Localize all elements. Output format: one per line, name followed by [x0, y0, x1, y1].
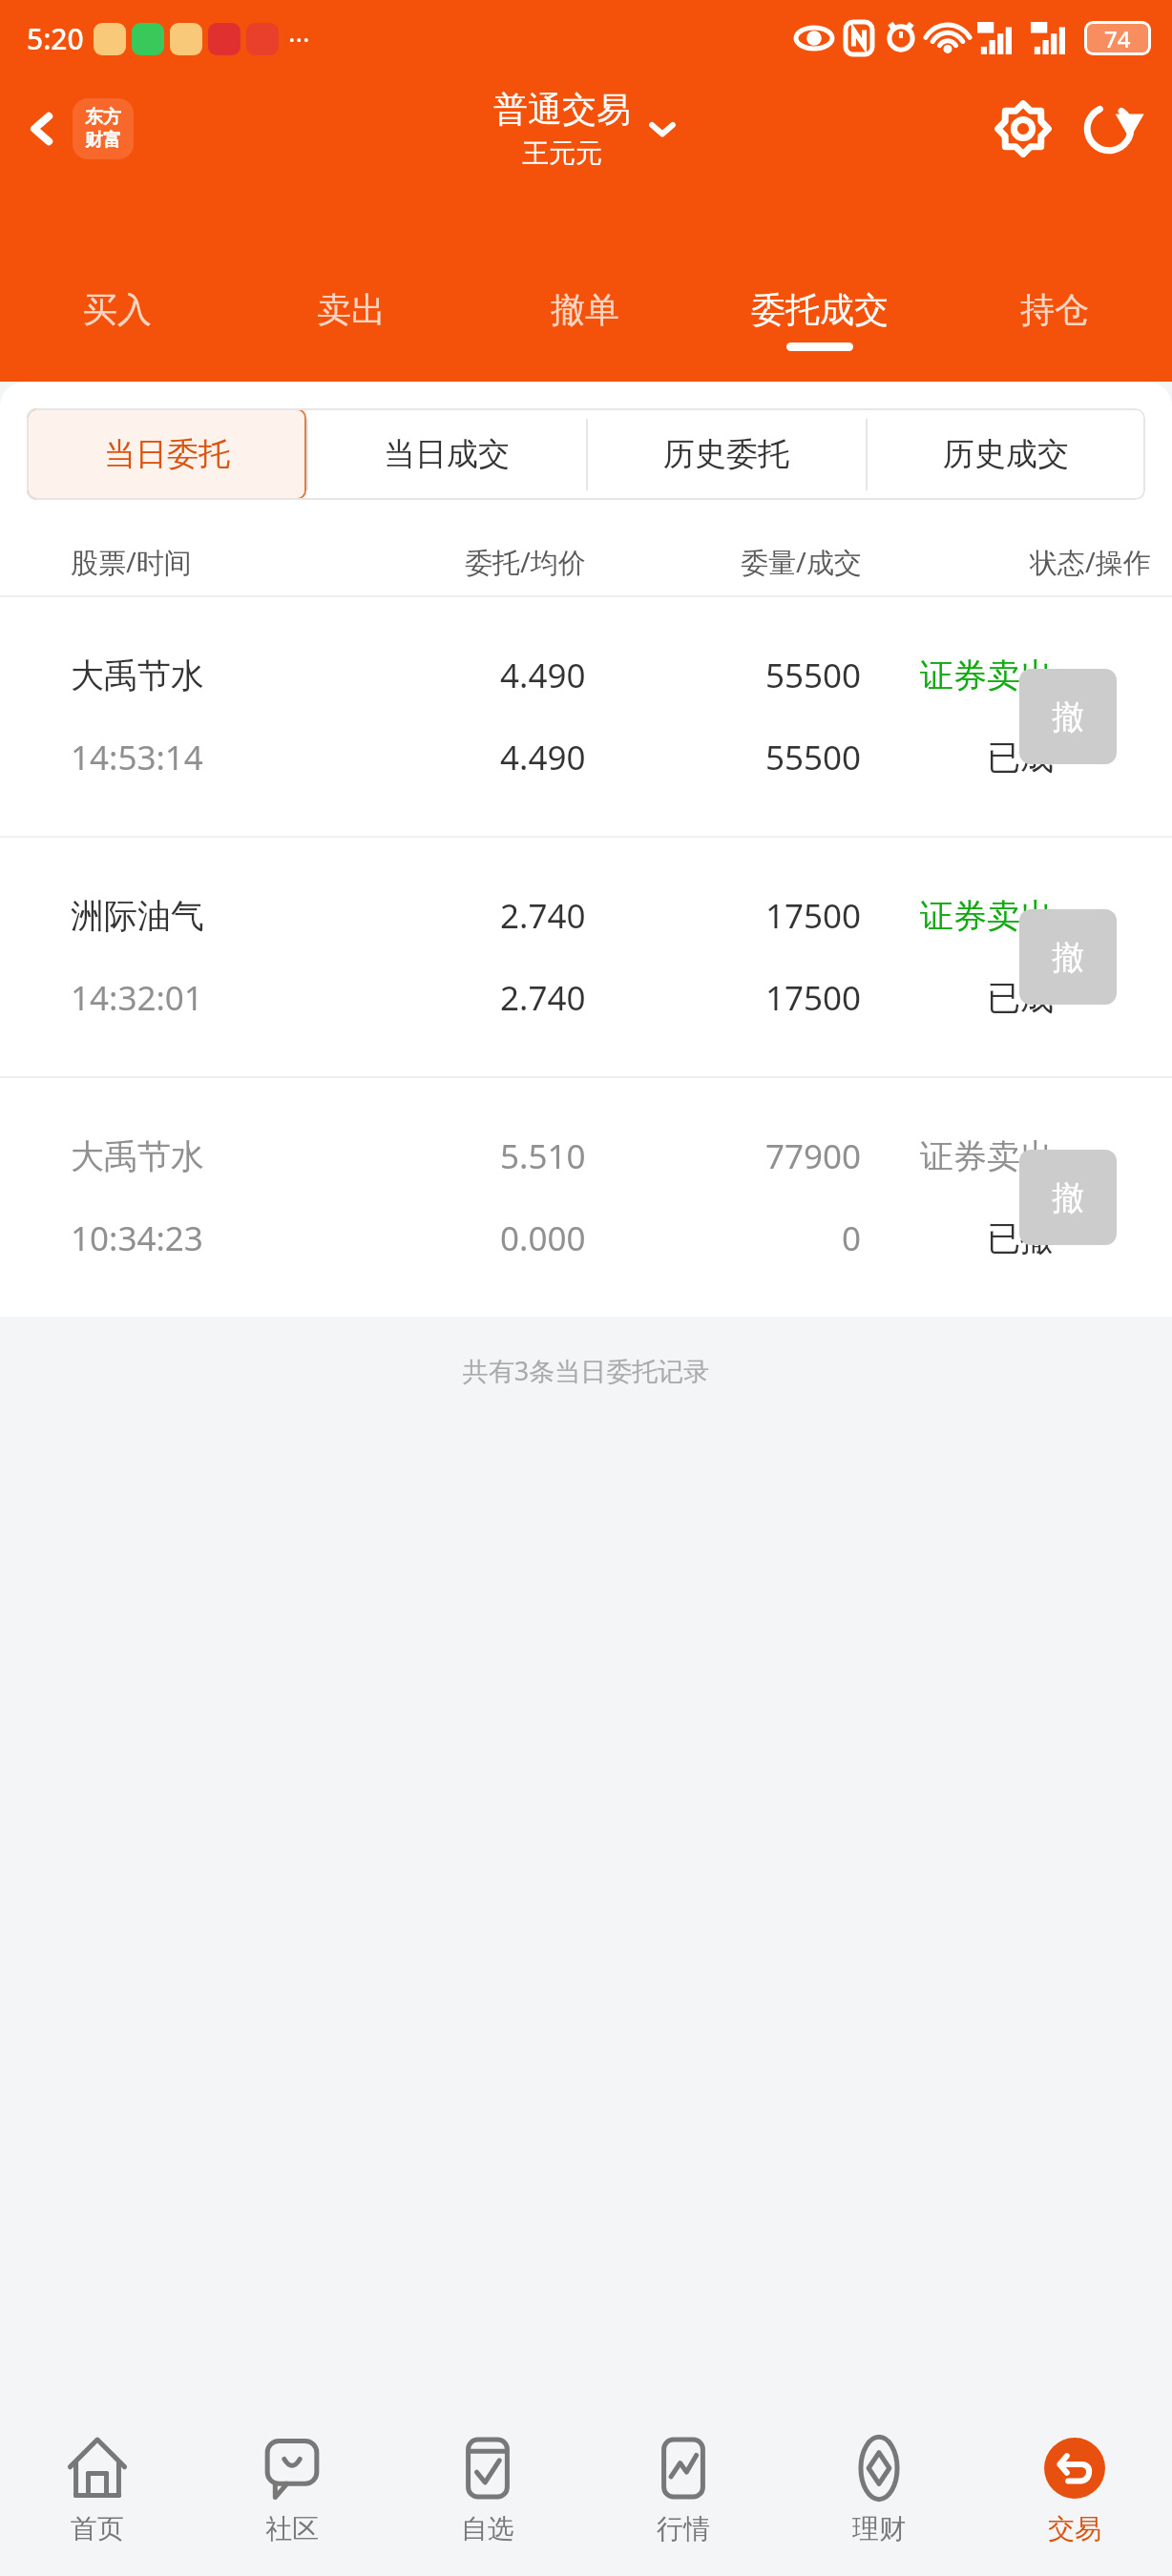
staticText: 首页 [71, 2512, 124, 2545]
staticText: 大禹节水 [71, 654, 204, 696]
staticText: 0.000 [500, 1215, 586, 1261]
button[interactable]: 撤单 [468, 277, 702, 382]
staticText: 交易 [1048, 2512, 1101, 2545]
staticText: 撤 [1052, 696, 1084, 737]
staticText: 77900 [765, 1133, 862, 1179]
staticText: 历史委托 [663, 434, 789, 474]
staticText: 74 [1104, 23, 1131, 54]
staticText: 卖出 [317, 288, 386, 331]
button[interactable]: 当日成交 [306, 408, 586, 500]
staticText: 2.740 [500, 975, 586, 1021]
button[interactable]: 撤 [1019, 909, 1117, 1005]
button[interactable]: 首页 [0, 2404, 195, 2576]
staticText: 历史成交 [943, 434, 1069, 474]
button[interactable]: 历史成交 [866, 408, 1145, 500]
staticText: 已撤 [987, 1217, 1054, 1259]
staticText: 10:34:23 [71, 1215, 203, 1261]
staticText: 14:53:14 [71, 735, 203, 780]
button[interactable]: 当日委托 [27, 408, 306, 500]
staticText: 当日成交 [384, 434, 510, 474]
staticText: 社区 [265, 2512, 319, 2545]
staticText: 撤单 [551, 288, 619, 331]
staticText: 5.510 [500, 1133, 586, 1179]
button[interactable]: 返回 [17, 93, 139, 165]
staticText: ··· [288, 21, 310, 57]
staticText: 委量/成交 [741, 543, 862, 581]
staticText: 买入 [83, 288, 152, 331]
button[interactable]: 委托成交 [702, 277, 937, 382]
button[interactable]: 撤 [1019, 669, 1117, 764]
button[interactable]: 行情 [585, 2404, 781, 2576]
staticText: 撤 [1052, 1177, 1084, 1218]
staticText: 东方 [85, 106, 121, 129]
staticText: 委托/均价 [465, 543, 586, 581]
staticText: 共有3条当日委托记录 [0, 1353, 1172, 1388]
staticText: 状态/操作 [1030, 543, 1151, 581]
button[interactable]: 持仓 [937, 277, 1172, 382]
staticText: 撤 [1052, 937, 1084, 978]
button[interactable]: 历史委托 [586, 408, 866, 500]
staticText: 普通交易 [493, 88, 631, 131]
staticText: 0 [842, 1215, 862, 1261]
button[interactable]: 卖出 [234, 277, 468, 382]
button[interactable]: 洲际油气 [0, 838, 1172, 1076]
staticText: 4.490 [500, 735, 586, 780]
button[interactable]: 大禹节水 [0, 597, 1172, 836]
staticText: 证券卖出 [920, 1135, 1054, 1177]
staticText: 持仓 [1020, 288, 1089, 331]
button[interactable]: 买入 [0, 277, 234, 382]
staticText: 已成 [987, 737, 1054, 779]
button[interactable]: 大禹节水 [0, 1078, 1172, 1317]
button[interactable]: 理财 [781, 2404, 976, 2576]
staticText: 自选 [461, 2512, 514, 2545]
other: 切换账户 [646, 113, 679, 145]
staticText: 行情 [657, 2512, 710, 2545]
staticText: 证券卖出 [920, 654, 1054, 696]
staticText: 财富 [85, 129, 121, 152]
staticText: 55500 [765, 735, 862, 780]
staticText: 17500 [765, 893, 862, 939]
button[interactable]: 普通交易 [493, 88, 631, 170]
button[interactable]: 交易 [976, 2404, 1172, 2576]
staticText: 证券卖出 [920, 895, 1054, 937]
staticText: 洲际油气 [71, 895, 204, 937]
staticText: 4.490 [500, 653, 586, 698]
staticText: 17500 [765, 975, 862, 1021]
staticText: 大禹节水 [71, 1135, 204, 1177]
staticText: 委托成交 [751, 288, 889, 331]
staticText: 理财 [852, 2512, 906, 2545]
staticText: 已成 [987, 977, 1054, 1019]
button[interactable]: 刷新 [1075, 94, 1143, 163]
button[interactable]: 社区 [195, 2404, 389, 2576]
button[interactable]: 撤 [1019, 1150, 1117, 1245]
staticText: 当日委托 [104, 434, 230, 474]
button[interactable]: 设置 [989, 94, 1057, 163]
staticText: 5:20 [27, 19, 84, 58]
staticText: 2.740 [500, 893, 586, 939]
button[interactable]: 自选 [389, 2404, 585, 2576]
staticText: 55500 [765, 653, 862, 698]
staticText: 股票/时间 [71, 543, 192, 581]
staticText: 王元元 [522, 136, 602, 170]
staticText: 14:32:01 [71, 975, 203, 1021]
